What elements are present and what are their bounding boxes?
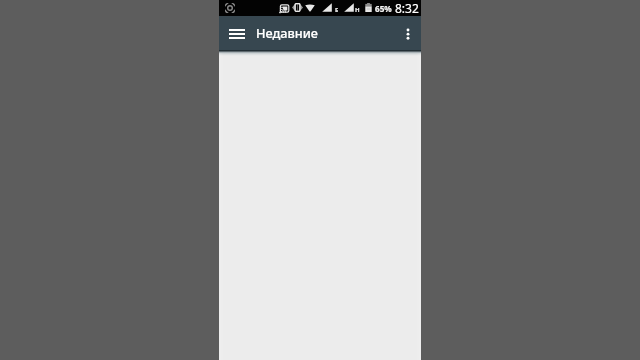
button[interactable]: Open navigation drawer	[220, 16, 254, 50]
staticText: 65%	[375, 3, 392, 14]
staticText: H	[355, 6, 360, 14]
staticText: Недавние	[256, 24, 318, 41]
other: Screenshot	[225, 3, 235, 13]
button[interactable]: More options	[390, 16, 421, 50]
staticText: 8:32	[395, 0, 419, 16]
staticText: E	[335, 6, 339, 14]
